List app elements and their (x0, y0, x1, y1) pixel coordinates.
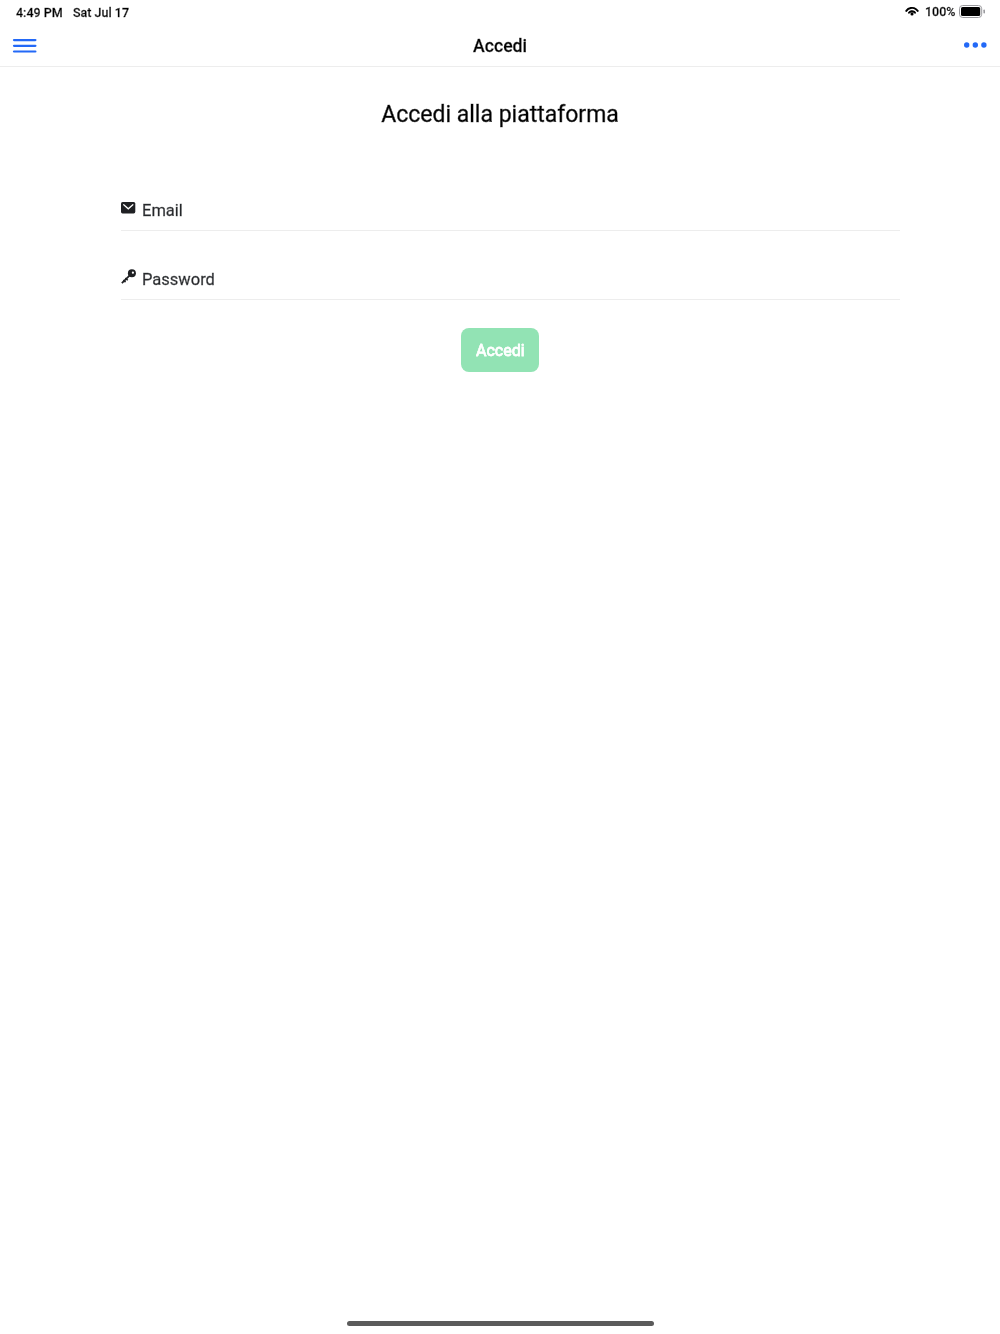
button[interactable]: Accedi (461, 328, 539, 372)
button[interactable]: Email (121, 196, 900, 232)
staticText: Accedi alla piattaforma (0, 101, 1000, 128)
staticText: Password (142, 270, 215, 289)
staticText: 4:49 PM (16, 5, 63, 20)
staticText: 4:49 PM (16, 5, 63, 20)
staticText: Email (142, 201, 183, 220)
staticText: Sat Jul 17 (73, 5, 129, 20)
staticText: Sat Jul 17 (73, 5, 129, 20)
staticText: Accedi (476, 341, 525, 360)
staticText: Accedi (0, 36, 1000, 57)
button[interactable]: More options (953, 28, 997, 62)
staticText: 100% (925, 4, 956, 19)
staticText: Password (142, 270, 215, 289)
staticText: Accedi (0, 36, 1000, 57)
staticText: 100% (925, 4, 956, 19)
staticText: Email (142, 201, 183, 220)
button[interactable]: Password (121, 263, 900, 299)
button[interactable]: Menu (4, 31, 48, 63)
staticText: Accedi (476, 341, 525, 360)
staticText: Accedi alla piattaforma (0, 101, 1000, 128)
